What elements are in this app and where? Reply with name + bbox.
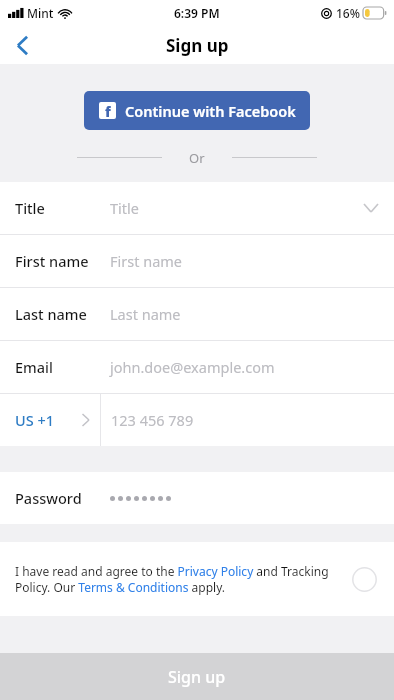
staticText: 16% bbox=[336, 5, 360, 21]
button[interactable]: 123 456 789 bbox=[101, 394, 394, 446]
staticText: 123 456 789 bbox=[111, 410, 194, 430]
staticText: Title bbox=[15, 198, 110, 218]
staticText: Email bbox=[15, 357, 110, 377]
staticText: Or bbox=[189, 149, 205, 165]
button[interactable]: US +1 bbox=[0, 394, 100, 446]
staticText: Last name bbox=[110, 304, 378, 324]
staticText: I have read and agree to the Privacy Pol… bbox=[15, 563, 335, 595]
staticText: First name bbox=[110, 251, 378, 271]
staticText: US +1 bbox=[15, 410, 55, 430]
staticText: Password bbox=[15, 488, 110, 508]
button[interactable]: Email bbox=[0, 341, 394, 393]
button[interactable]: Title bbox=[0, 182, 394, 234]
button[interactable]: Agree to terms bbox=[347, 562, 381, 596]
staticText: john.doe@example.com bbox=[110, 357, 378, 377]
staticText: Sign up bbox=[168, 666, 226, 688]
staticText: 6:39 PM bbox=[174, 5, 220, 21]
staticText: Sign up bbox=[166, 34, 229, 57]
button[interactable]: Back bbox=[0, 26, 44, 64]
staticText: Last name bbox=[15, 304, 110, 324]
staticText: Title bbox=[110, 198, 364, 218]
button[interactable]: Sign up bbox=[0, 653, 394, 700]
staticText: Mint bbox=[27, 5, 54, 21]
button[interactable]: First name bbox=[0, 235, 394, 287]
button[interactable]: Password bbox=[0, 472, 394, 524]
staticText: Continue with Facebook bbox=[125, 101, 296, 121]
button[interactable]: Last name bbox=[0, 288, 394, 340]
button[interactable]: f bbox=[84, 91, 310, 130]
staticText: First name bbox=[15, 251, 110, 271]
staticText: f bbox=[105, 102, 111, 119]
